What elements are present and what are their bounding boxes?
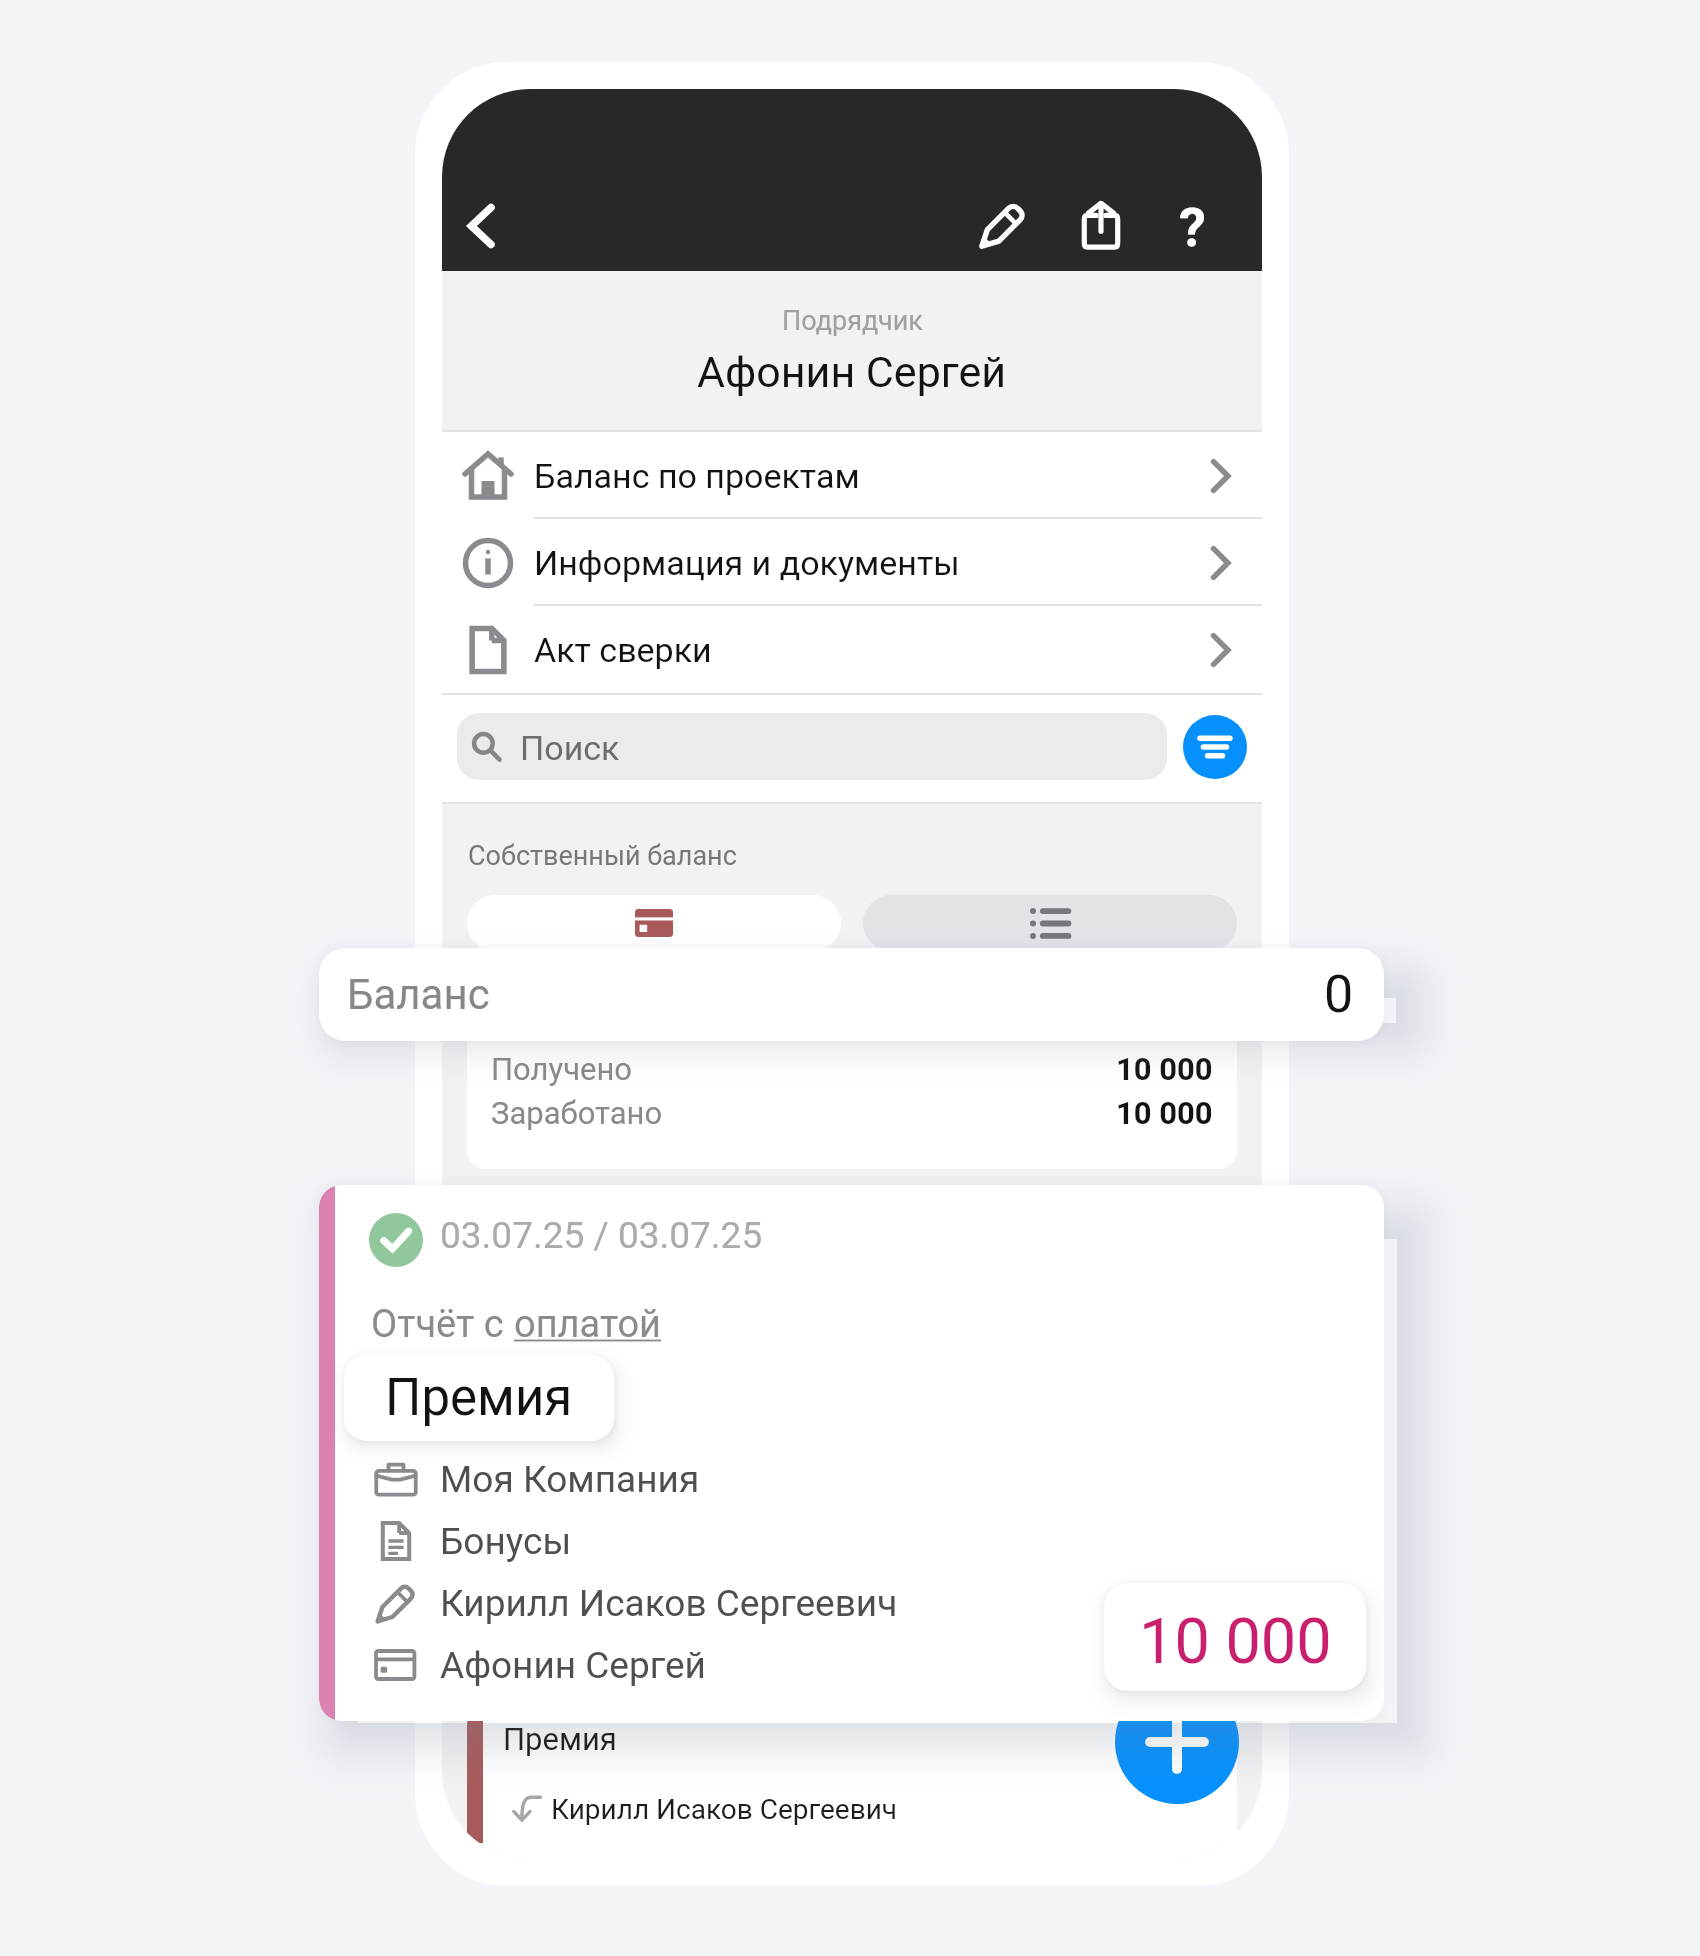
staticText: Афонин Сергей bbox=[440, 1644, 706, 1687]
button[interactable]: 03.07.25 / 03.07.25 bbox=[319, 1185, 1384, 1721]
staticText: Баланс по проектам bbox=[534, 456, 860, 496]
staticText: 03.07.25 / 03.07.25 bbox=[440, 1214, 763, 1257]
staticText: Моя Компания bbox=[440, 1458, 700, 1501]
staticText: Заработано bbox=[491, 1095, 663, 1131]
staticText: 10 000 bbox=[1116, 1095, 1213, 1131]
button[interactable]: Add bbox=[1115, 1680, 1239, 1804]
staticText: Акт сверки bbox=[534, 630, 712, 670]
button[interactable]: List view bbox=[863, 895, 1237, 951]
staticText: Поиск bbox=[520, 728, 620, 768]
staticText: ? bbox=[1179, 196, 1206, 259]
button[interactable]: Премия bbox=[344, 1355, 614, 1441]
staticText: Получено bbox=[491, 1051, 632, 1087]
staticText: Бонусы bbox=[440, 1520, 572, 1563]
button[interactable]: Баланс по проектам bbox=[442, 432, 1262, 519]
staticText: Кирилл Исаков Сергеевич bbox=[440, 1582, 898, 1625]
staticText: Афонин Сергей bbox=[697, 347, 1007, 397]
button[interactable]: Cards view bbox=[467, 895, 841, 951]
button[interactable]: Report bbox=[467, 1193, 1237, 1703]
button[interactable]: Получено bbox=[467, 983, 1237, 1169]
staticText: Премия bbox=[503, 1721, 617, 1757]
button[interactable]: Share bbox=[1053, 177, 1149, 273]
staticText: Отчёт с bbox=[371, 1302, 514, 1347]
button[interactable]: Информация и документы bbox=[442, 519, 1262, 606]
button[interactable]: Edit bbox=[957, 177, 1053, 273]
staticText: Собственный баланс bbox=[468, 840, 737, 872]
button[interactable]: 10 000 bbox=[1104, 1583, 1366, 1691]
button[interactable]: Поиск bbox=[457, 713, 1167, 780]
button[interactable]: Filter bbox=[1183, 715, 1247, 779]
staticText: 0 bbox=[1324, 964, 1354, 1025]
staticText: оплатой bbox=[514, 1302, 662, 1347]
staticText: 10 000 bbox=[1139, 1605, 1332, 1679]
staticText: Информация и документы bbox=[534, 543, 960, 583]
button[interactable]: Back bbox=[442, 178, 529, 274]
staticText: Кирилл Исаков Сергеевич bbox=[551, 1793, 898, 1826]
button[interactable]: Акт сверки bbox=[442, 606, 1262, 693]
staticText: Премия bbox=[385, 1368, 573, 1428]
button[interactable]: Баланс bbox=[319, 948, 1384, 1041]
button[interactable]: Премия bbox=[467, 1709, 1237, 1859]
button[interactable]: Help bbox=[1149, 177, 1245, 273]
staticText: 10 000 bbox=[1116, 1051, 1213, 1087]
staticText: Подрядчик bbox=[782, 305, 923, 337]
staticText: Баланс bbox=[347, 970, 490, 1019]
